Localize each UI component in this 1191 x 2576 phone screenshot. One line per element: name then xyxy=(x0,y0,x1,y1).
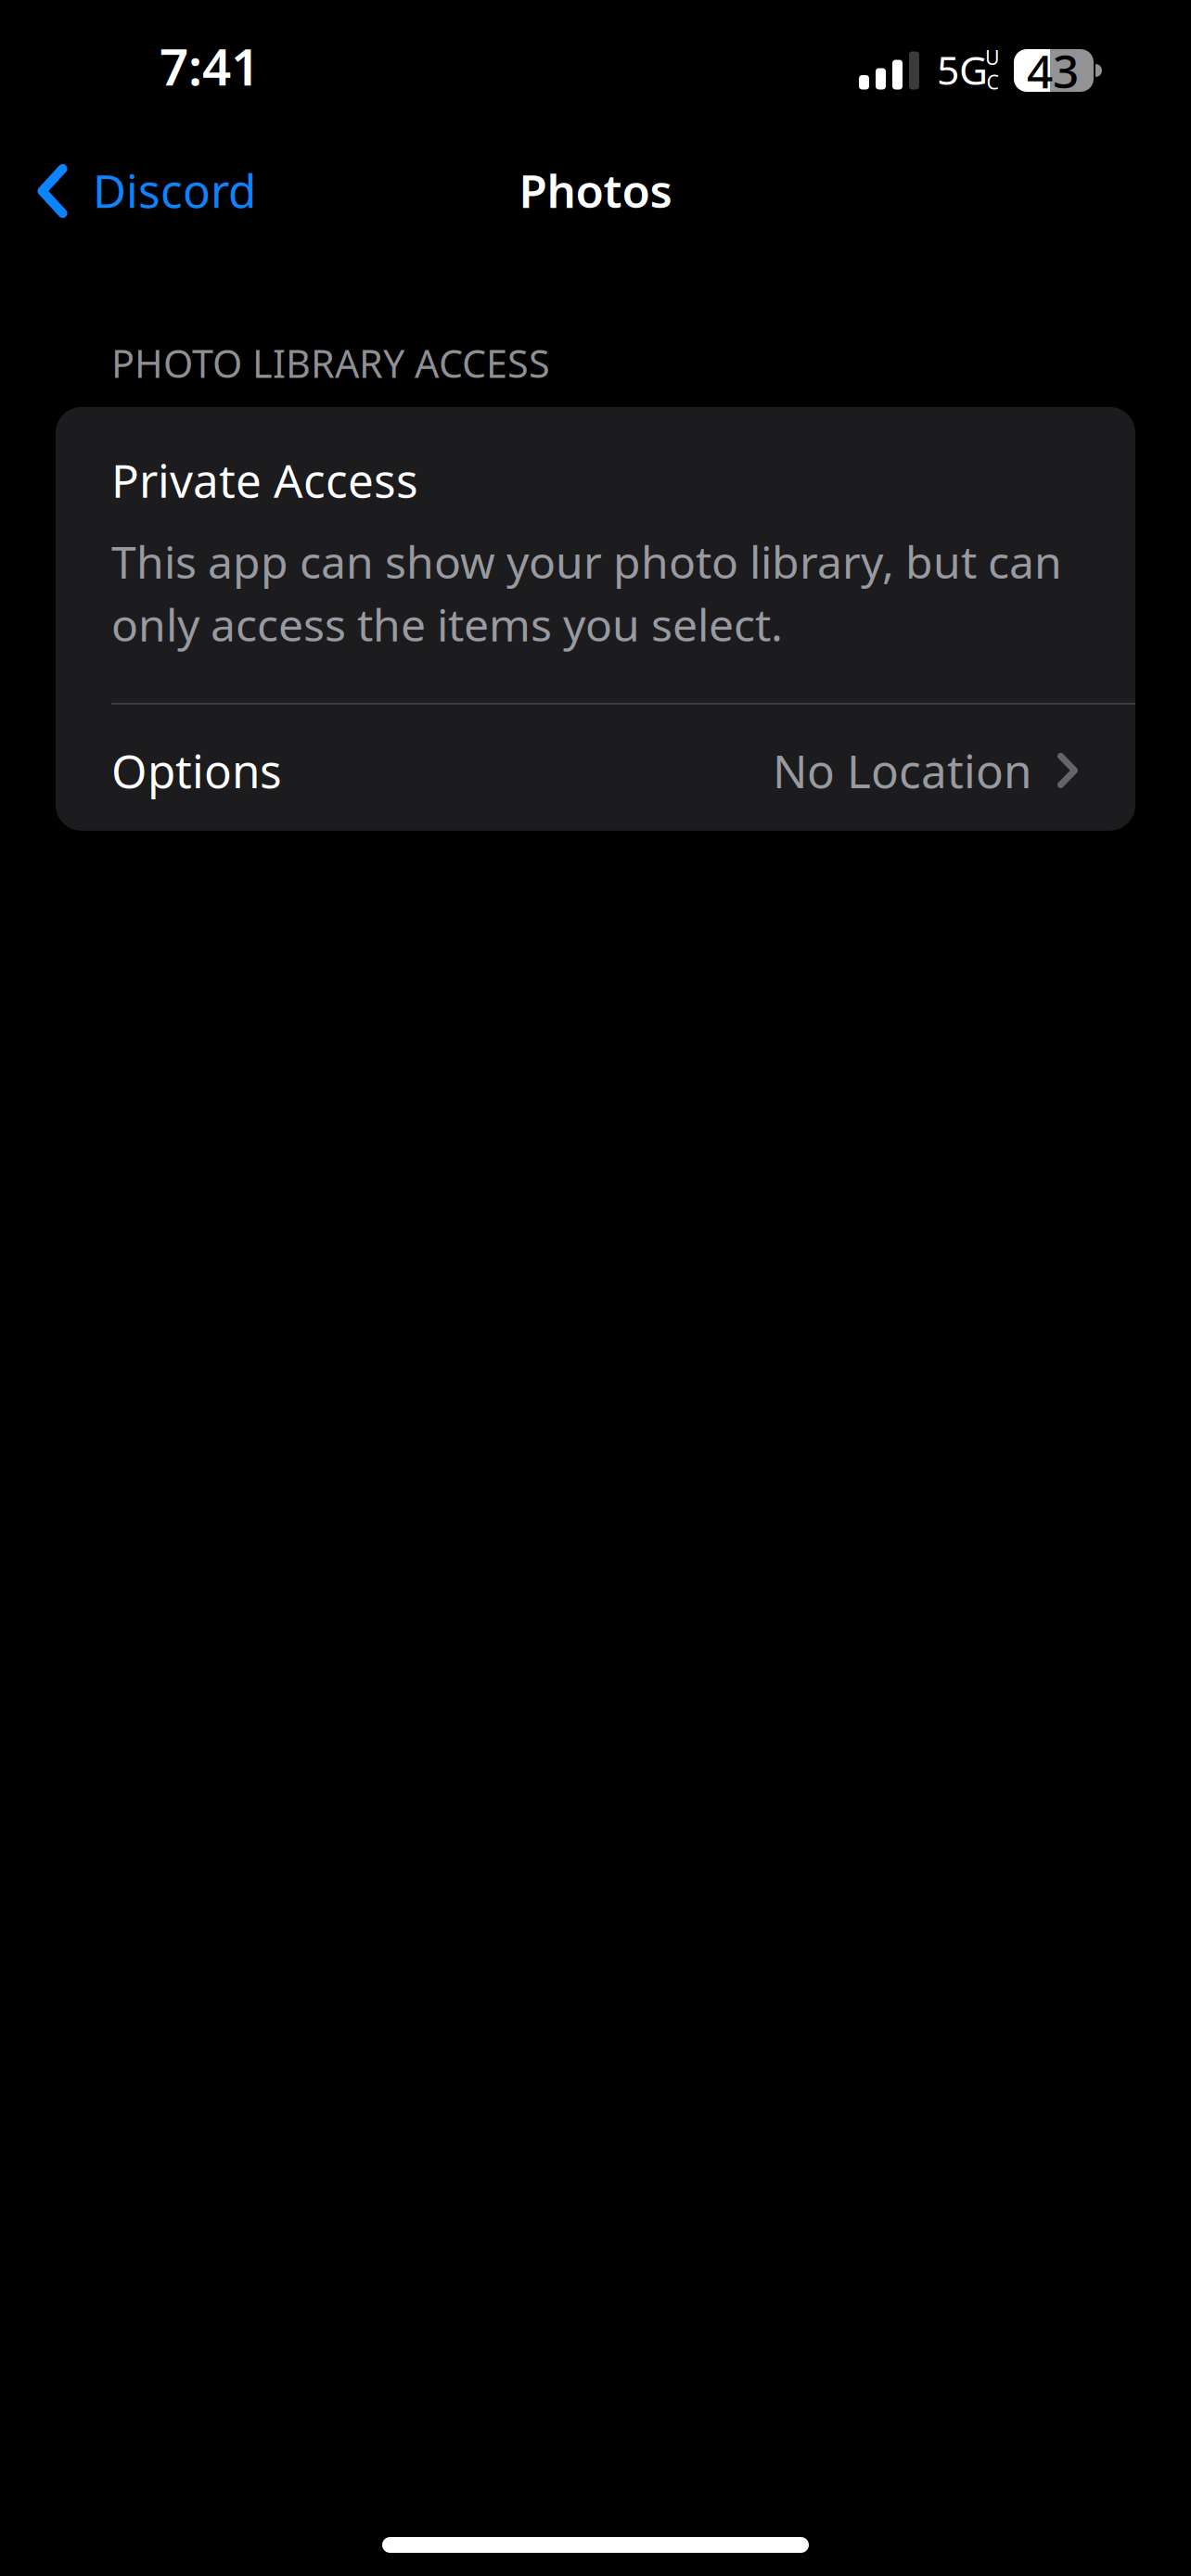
staticText: PHOTO LIBRARY ACCESS xyxy=(111,338,550,388)
staticText: Private Access xyxy=(111,450,418,510)
staticText: This app can show your photo library, bu… xyxy=(111,532,1062,654)
staticText: Discord xyxy=(93,160,256,220)
staticText: No Location xyxy=(773,740,1031,801)
button[interactable]: Options xyxy=(56,705,1135,831)
button[interactable]: Back to Discord xyxy=(0,132,278,249)
staticText: Photos xyxy=(519,160,672,220)
staticText: 43 xyxy=(1027,40,1079,101)
staticText: 5G xyxy=(937,43,988,96)
staticText: C xyxy=(986,69,999,95)
staticText: 7:41 xyxy=(160,32,260,99)
staticText: U xyxy=(985,44,1000,70)
staticText: Options xyxy=(111,740,282,801)
